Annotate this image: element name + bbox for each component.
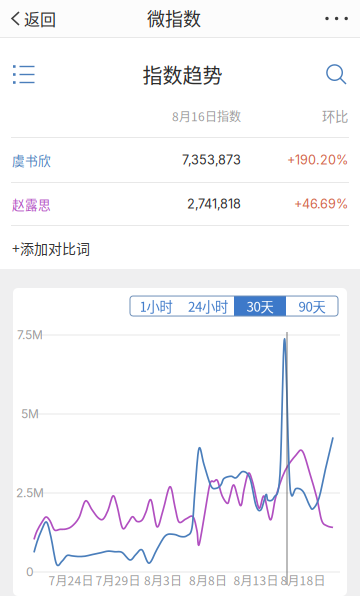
staticText: +190.20% <box>287 152 348 168</box>
button[interactable]: 90天 <box>286 296 338 316</box>
staticText: 返回 <box>24 7 56 30</box>
staticText: 5M <box>21 407 39 421</box>
button[interactable]: +添加对比词 <box>0 226 360 270</box>
staticText: 虞书欣 <box>12 151 51 169</box>
button[interactable]: 1小时 <box>130 296 182 316</box>
staticText: 8月16日指数 <box>172 107 241 125</box>
staticText: 2,741,818 <box>187 196 241 212</box>
staticText: 8月3日 <box>144 571 182 589</box>
staticText: 2.5M <box>16 486 44 500</box>
staticText: 赵露思 <box>12 195 51 213</box>
staticText: 8月8日 <box>189 571 227 589</box>
button[interactable]: 24小时 <box>182 296 234 316</box>
button[interactable]: More <box>313 5 360 32</box>
staticText: 24小时 <box>188 296 228 316</box>
button[interactable]: 返回 <box>0 0 68 39</box>
staticText: 7月29日 <box>95 571 140 589</box>
button[interactable]: List <box>0 57 45 92</box>
staticText: 90天 <box>298 296 325 316</box>
staticText: 7月24日 <box>48 571 93 589</box>
staticText: 环比 <box>322 106 348 126</box>
staticText: +46.69% <box>294 196 348 212</box>
staticText: 8月13日 <box>233 571 278 589</box>
staticText: 7.5M <box>17 328 43 342</box>
staticText: 7,353,873 <box>182 152 241 168</box>
staticText: 微指数 <box>147 5 201 31</box>
staticText: +添加对比词 <box>12 238 90 258</box>
staticText: 30天 <box>246 296 273 316</box>
button[interactable]: 虞书欣 <box>0 138 360 182</box>
button[interactable]: Search <box>316 56 360 93</box>
staticText: 0 <box>26 565 34 579</box>
button[interactable]: 赵露思 <box>0 183 360 225</box>
staticText: 1小时 <box>139 296 172 316</box>
button[interactable]: 30天 <box>234 296 286 316</box>
staticText: 8月18日 <box>280 571 325 589</box>
staticText: 指数趋势 <box>142 60 222 89</box>
